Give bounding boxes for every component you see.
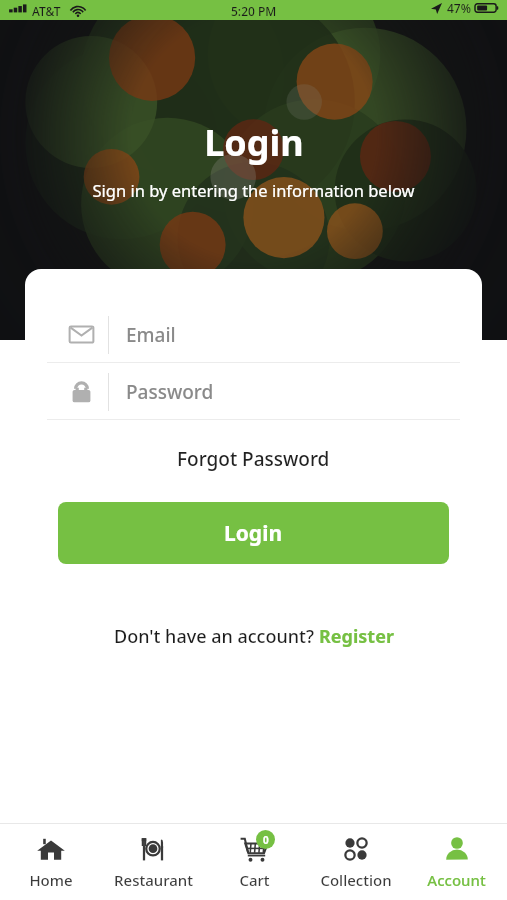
button[interactable]: Register <box>319 624 394 649</box>
staticText: Login <box>224 519 283 548</box>
staticText: Don't have an account? <box>114 624 319 649</box>
other: Password <box>68 378 95 405</box>
staticText: Collection <box>320 870 392 890</box>
button[interactable]: Account <box>406 826 507 898</box>
staticText: Forgot Password <box>177 446 330 472</box>
button[interactable]: Restaurant <box>102 826 204 898</box>
button[interactable]: Forgot Password <box>167 442 340 476</box>
staticText: Account <box>427 870 486 890</box>
staticText: Restaurant <box>114 870 193 890</box>
button[interactable]: Home <box>0 826 102 898</box>
button[interactable]: Collection <box>305 826 406 898</box>
staticText: Register <box>319 624 394 649</box>
staticText: Sign in by entering the information belo… <box>92 179 415 201</box>
staticText: 5:20 PM <box>231 3 277 19</box>
staticText: AT&T <box>32 3 61 19</box>
staticText: Email <box>126 322 176 348</box>
button[interactable]: 0 <box>204 826 305 898</box>
button[interactable]: Password <box>25 364 482 419</box>
button[interactable]: Email <box>25 307 482 362</box>
staticText: 0 <box>263 833 269 847</box>
staticText: Login <box>204 118 304 167</box>
staticText: Password <box>126 379 214 405</box>
button[interactable]: Login <box>58 502 449 564</box>
staticText: Cart <box>239 870 270 890</box>
other: Email <box>68 321 95 348</box>
staticText: Home <box>29 870 73 890</box>
staticText: 47% <box>447 0 471 16</box>
